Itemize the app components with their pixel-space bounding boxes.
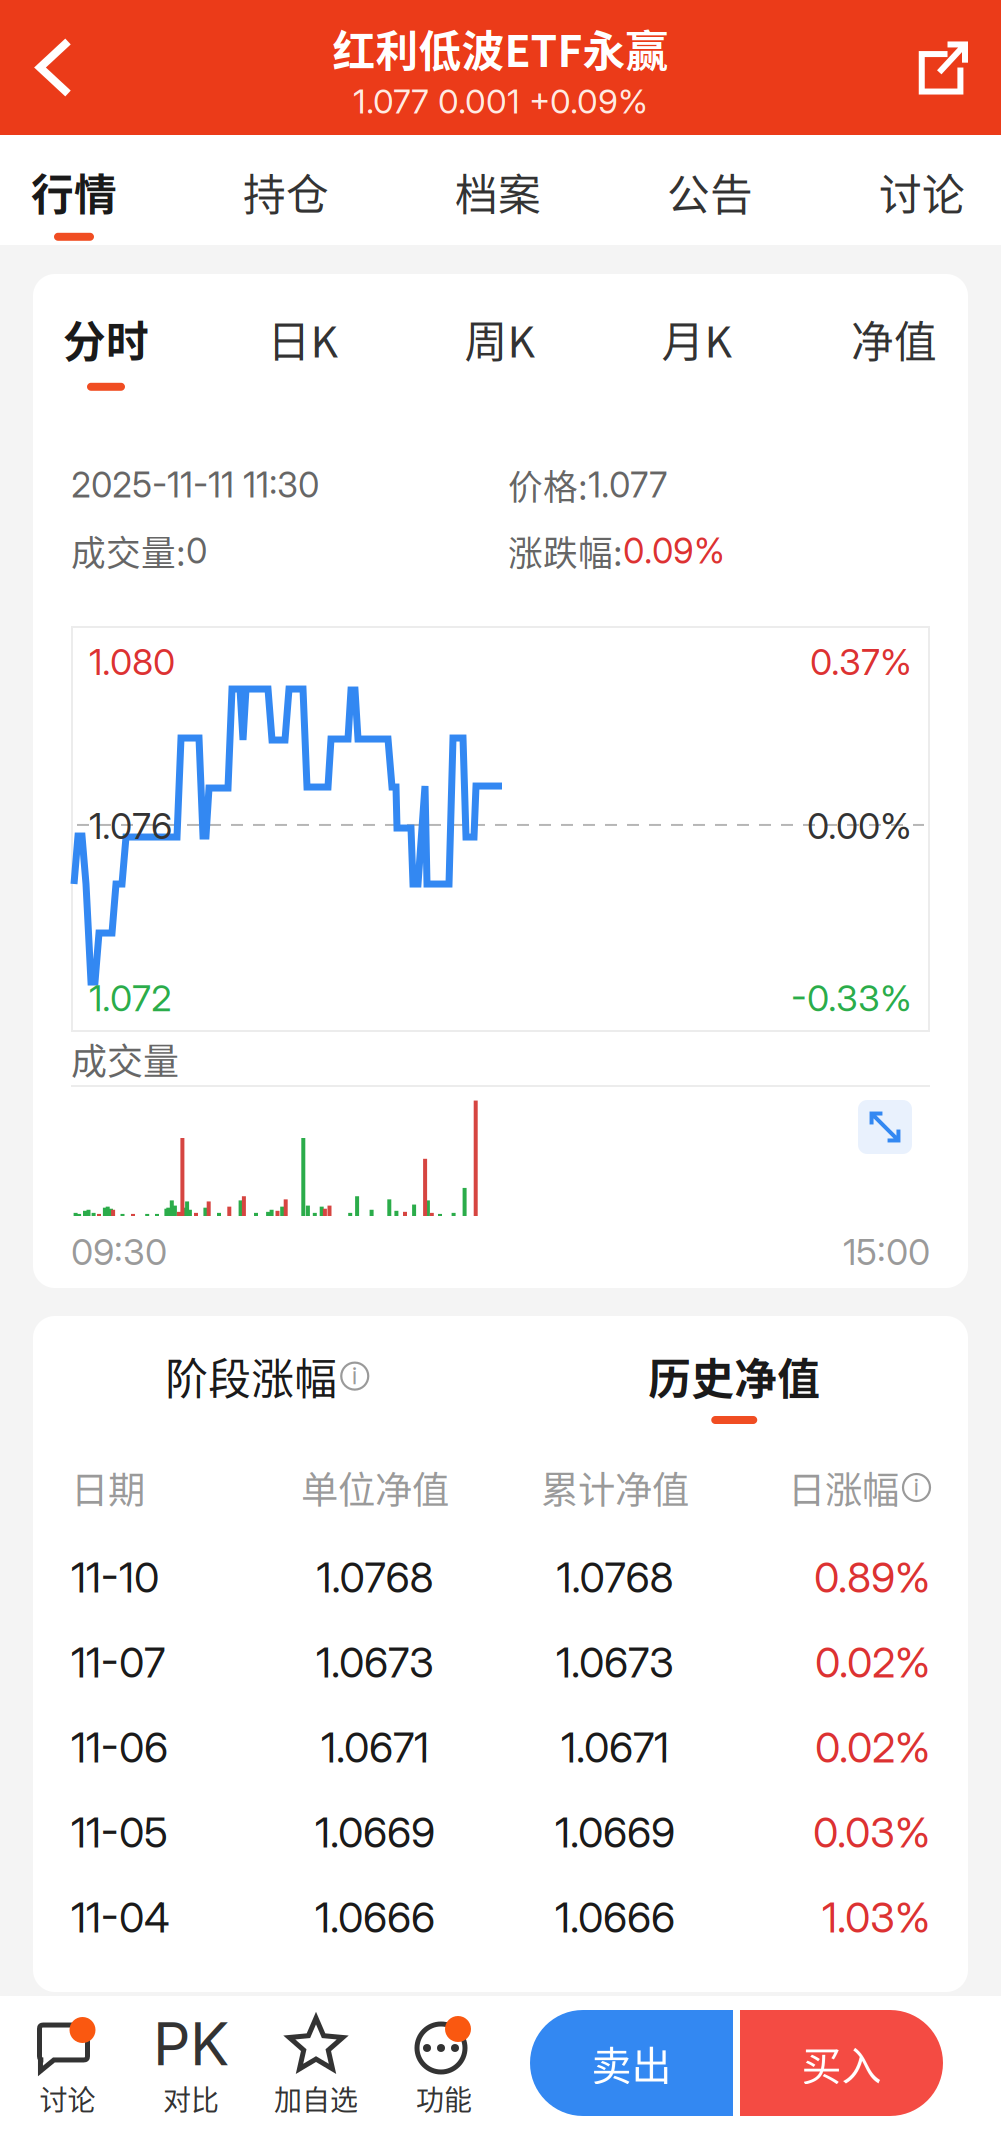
button[interactable]: 持仓 xyxy=(212,135,360,245)
staticText: -0.33% xyxy=(791,976,912,1020)
staticText: 1.0768 xyxy=(316,1552,433,1602)
staticText: 讨论 xyxy=(879,161,965,223)
staticText: 买入 xyxy=(801,2034,881,2092)
staticText: 净值 xyxy=(851,308,937,370)
button[interactable]: 功能 xyxy=(380,1996,508,2130)
button[interactable]: 讨论 xyxy=(848,135,996,245)
staticText: 11-10 xyxy=(71,1552,159,1602)
button[interactable]: 行情 xyxy=(0,135,148,245)
staticText: 1.03% xyxy=(822,1892,930,1942)
button[interactable]: Back xyxy=(0,0,108,135)
staticText: 累计净值 xyxy=(541,1460,689,1515)
button[interactable]: 档案 xyxy=(424,135,572,245)
staticText: 讨论 xyxy=(39,2078,95,2118)
button[interactable]: 净值 xyxy=(821,274,967,420)
button[interactable]: Fullscreen xyxy=(858,1100,912,1154)
staticText: 1.0673 xyxy=(316,1637,434,1687)
staticText: i xyxy=(913,1473,919,1501)
staticText: 日期 xyxy=(71,1460,145,1515)
staticText: 成交量 xyxy=(71,1033,179,1085)
staticText: 1.0669 xyxy=(315,1807,435,1857)
button[interactable]: 月K xyxy=(624,274,770,420)
staticText: 阶段涨幅 xyxy=(165,1345,337,1407)
staticText: 0.02% xyxy=(815,1722,930,1772)
staticText: 成交量: xyxy=(71,526,186,576)
button[interactable]: 卖出 xyxy=(530,2010,733,2116)
button[interactable]: 日K xyxy=(230,274,376,420)
staticText: 2025-11-11 11:30 xyxy=(71,464,319,506)
staticText: 单位净值 xyxy=(301,1460,449,1515)
staticText: PK xyxy=(153,2008,229,2079)
staticText: 11-07 xyxy=(71,1637,165,1687)
staticText: 档案 xyxy=(455,161,541,223)
staticText: 行情 xyxy=(31,161,117,223)
staticText: 09:30 xyxy=(71,1230,167,1274)
staticText: 0 xyxy=(186,530,207,572)
staticText: 1.080 xyxy=(89,640,175,684)
staticText: 0.09% xyxy=(623,530,725,572)
staticText: 0.89% xyxy=(814,1552,930,1602)
staticText: 1.0671 xyxy=(321,1722,429,1772)
button[interactable]: 公告 xyxy=(636,135,784,245)
button[interactable]: 讨论 xyxy=(5,1996,130,2130)
staticText: 0.37% xyxy=(810,640,912,684)
staticText: 周K xyxy=(464,308,535,370)
staticText: 1.0666 xyxy=(555,1892,675,1942)
button[interactable]: 加自选 xyxy=(252,1996,380,2130)
staticText: 对比 xyxy=(163,2078,219,2118)
staticText: 0.03% xyxy=(813,1807,930,1857)
staticText: 1.077 0.001 +0.09% xyxy=(353,81,648,121)
staticText: 1.0671 xyxy=(561,1722,669,1772)
staticText: 15:00 xyxy=(843,1230,930,1274)
staticText: 1.0673 xyxy=(556,1637,674,1687)
button[interactable]: 分时 xyxy=(33,274,179,420)
button[interactable]: 买入 xyxy=(740,2010,943,2116)
button[interactable]: 周K xyxy=(427,274,573,420)
staticText: 加自选 xyxy=(274,2078,358,2118)
staticText: 卖出 xyxy=(591,2034,671,2092)
staticText: 日涨幅 xyxy=(788,1460,899,1515)
staticText: 月K xyxy=(661,308,732,370)
staticText: 11-04 xyxy=(71,1892,170,1942)
button[interactable]: PK xyxy=(130,1996,252,2130)
staticText: 1.076 xyxy=(89,804,172,848)
staticText: 11-05 xyxy=(71,1807,168,1857)
staticText: 公告 xyxy=(667,161,753,223)
staticText: 11-06 xyxy=(71,1722,168,1772)
staticText: i xyxy=(352,1361,358,1390)
staticText: 1.072 xyxy=(89,976,172,1020)
staticText: 1.077 xyxy=(588,464,667,506)
staticText: 1.0666 xyxy=(315,1892,435,1942)
staticText: 1.0669 xyxy=(555,1807,675,1857)
staticText: 历史净值 xyxy=(648,1345,820,1407)
button[interactable]: 阶段涨幅 xyxy=(33,1316,500,1440)
staticText: 日K xyxy=(267,308,338,370)
staticText: 价格: xyxy=(508,460,588,510)
staticText: 红利低波ETF永赢 xyxy=(332,17,668,79)
staticText: 持仓 xyxy=(243,161,329,223)
staticText: 1.0768 xyxy=(556,1552,673,1602)
staticText: 功能 xyxy=(416,2078,472,2118)
staticText: 0.00% xyxy=(807,804,912,848)
staticText: 分时 xyxy=(63,308,149,370)
button[interactable]: 历史净值 xyxy=(500,1316,968,1440)
staticText: 0.02% xyxy=(815,1637,930,1687)
staticText: 涨跌幅: xyxy=(508,526,623,576)
button[interactable]: Share xyxy=(883,0,1001,135)
